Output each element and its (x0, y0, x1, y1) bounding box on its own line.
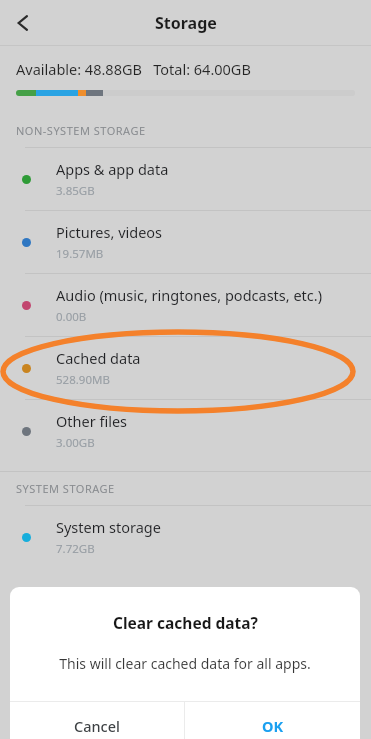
staticText: NON-SYSTEM STORAGE (16, 123, 146, 138)
staticText: Clear cached data? (113, 612, 258, 633)
button[interactable]: Cancel (10, 702, 184, 739)
staticText: SYSTEM STORAGE (16, 481, 115, 496)
staticText: Pictures, videos (56, 222, 163, 242)
staticText: Other files (56, 411, 128, 431)
staticText: Cancel (74, 716, 120, 736)
staticText: Available: 48.88GB Total: 64.00GB (16, 59, 251, 79)
staticText: 19.57MB (56, 246, 104, 262)
staticText: Apps & app data (56, 159, 169, 179)
staticText: Storage (155, 12, 217, 34)
button[interactable]: Back (0, 0, 46, 46)
staticText: 7.72GB (56, 541, 95, 557)
button[interactable]: Cached data (0, 337, 371, 399)
staticText: 0.00B (56, 309, 87, 325)
staticText: 3.85GB (56, 183, 95, 199)
staticText: OK (262, 716, 284, 736)
staticText: 528.90MB (56, 372, 110, 388)
staticText: This will clear cached data for all apps… (59, 654, 311, 673)
staticText: Audio (music, ringtones, podcasts, etc.) (56, 285, 323, 305)
button[interactable]: Other files (0, 400, 371, 462)
staticText: Cached data (56, 348, 141, 368)
button[interactable]: Audio (music, ringtones, podcasts, etc.) (0, 274, 371, 336)
staticText: 3.00GB (56, 435, 95, 451)
button[interactable]: OK (185, 702, 360, 739)
button[interactable]: Pictures, videos (0, 211, 371, 273)
button[interactable]: System storage (0, 506, 371, 568)
staticText: System storage (56, 517, 161, 537)
button[interactable]: Apps & app data (0, 148, 371, 210)
